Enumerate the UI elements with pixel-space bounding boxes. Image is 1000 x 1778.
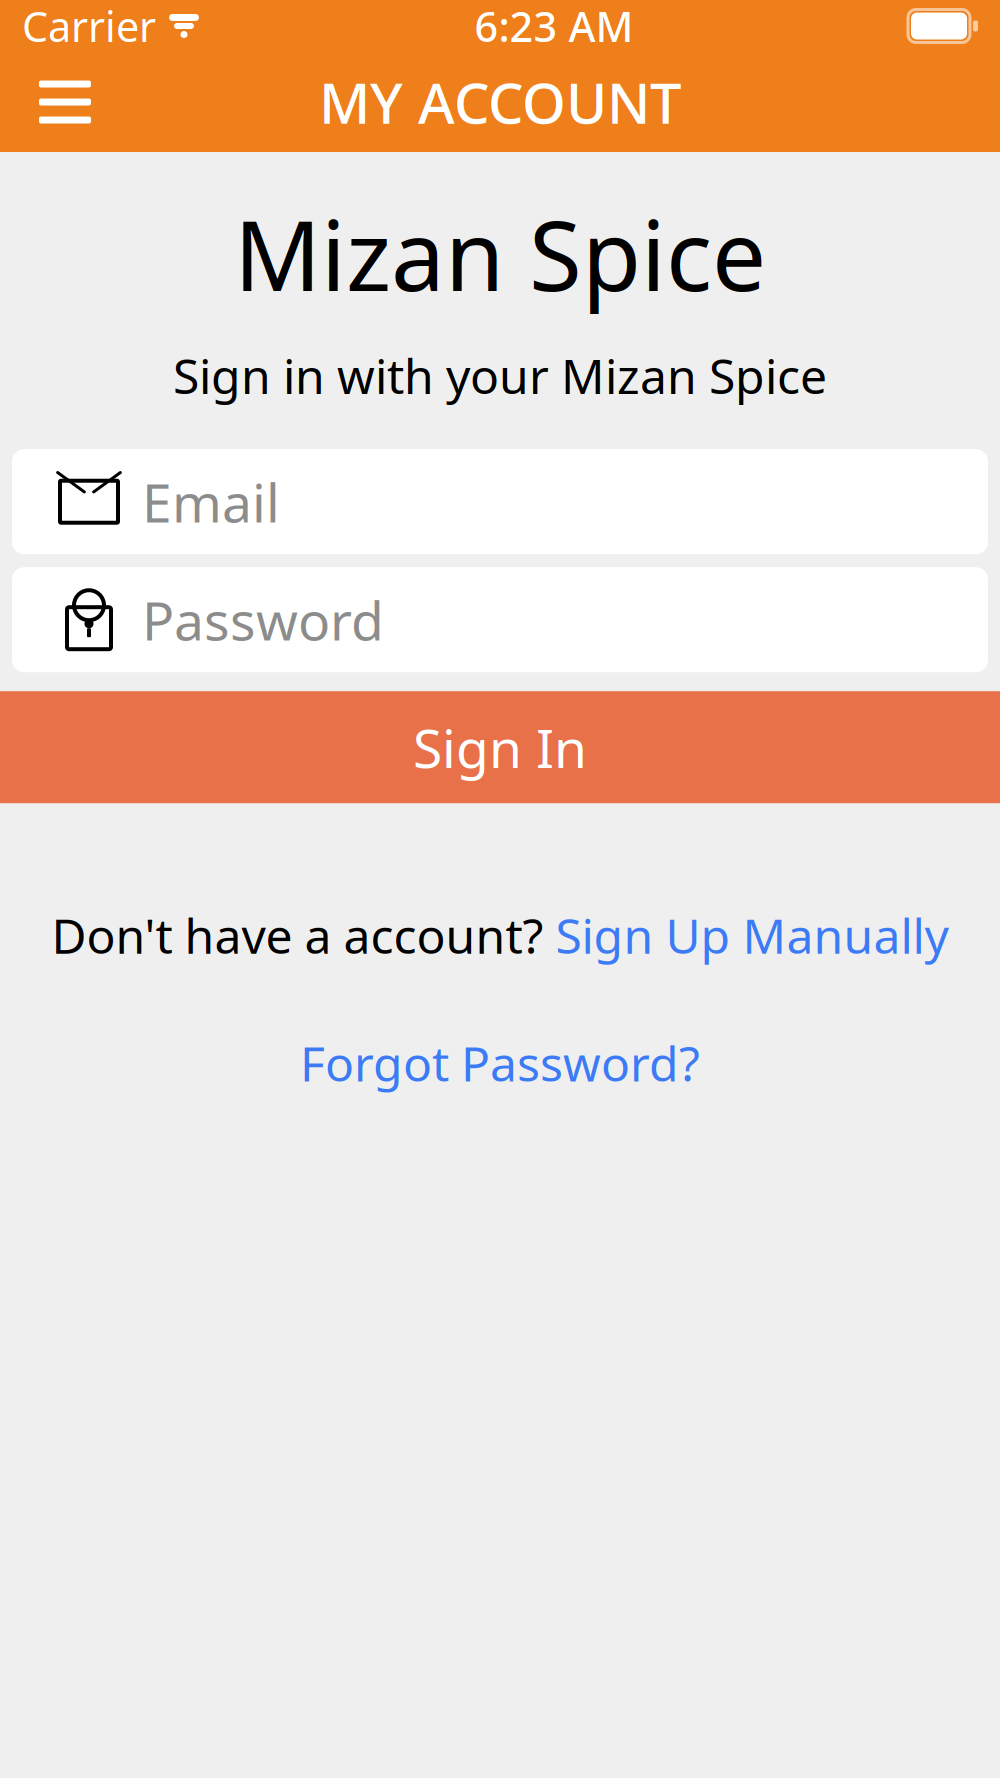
staticText: Mizan Spice	[234, 190, 766, 317]
staticText: Email	[142, 466, 280, 537]
staticText: Password	[142, 584, 384, 655]
staticText: MY ACCOUNT	[319, 65, 681, 139]
staticText: Sign Up Manually	[555, 903, 948, 967]
button[interactable]: Forgot Password?	[280, 1017, 720, 1109]
staticText: 6:23 AM	[474, 0, 633, 53]
button[interactable]: Sign Up Manually	[555, 903, 948, 967]
button[interactable]: Sign In	[0, 691, 1000, 803]
staticText: Forgot Password?	[300, 1031, 700, 1095]
staticText: Sign in with your Mizan Spice	[173, 343, 827, 407]
staticText: Sign In	[413, 712, 587, 783]
button[interactable]: Menu	[20, 59, 110, 145]
staticText: Don't have a account?	[51, 903, 555, 967]
staticText: Carrier	[22, 0, 156, 53]
